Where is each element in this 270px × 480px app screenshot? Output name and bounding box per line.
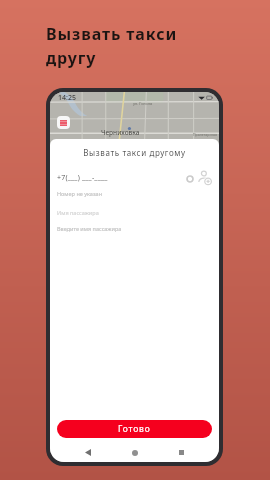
- staticText: другу: [46, 47, 97, 69]
- button[interactable]: Add contact: [197, 170, 212, 185]
- button[interactable]: Recents: [172, 443, 191, 462]
- button[interactable]: Готово: [57, 420, 212, 438]
- button[interactable]: Menu: [57, 116, 70, 129]
- staticText: Имя пассажира: [57, 209, 99, 216]
- staticText: Черниховка: [101, 128, 140, 137]
- button[interactable]: Back: [78, 443, 97, 462]
- staticText: +7(___) ___-____: [57, 173, 108, 183]
- staticText: Вызвать такси: [46, 23, 178, 45]
- staticText: ул. Гоголя: [133, 101, 153, 106]
- button[interactable]: Home: [125, 443, 144, 462]
- staticText: Готово: [118, 423, 151, 435]
- staticText: Пролетарская: [193, 132, 217, 137]
- staticText: Вызвать такси другому: [50, 147, 219, 158]
- staticText: Введите имя пассажира: [57, 225, 122, 232]
- staticText: 14:25: [58, 93, 76, 103]
- button[interactable]: Clear: [184, 173, 195, 184]
- staticText: Номер не указан: [57, 190, 103, 197]
